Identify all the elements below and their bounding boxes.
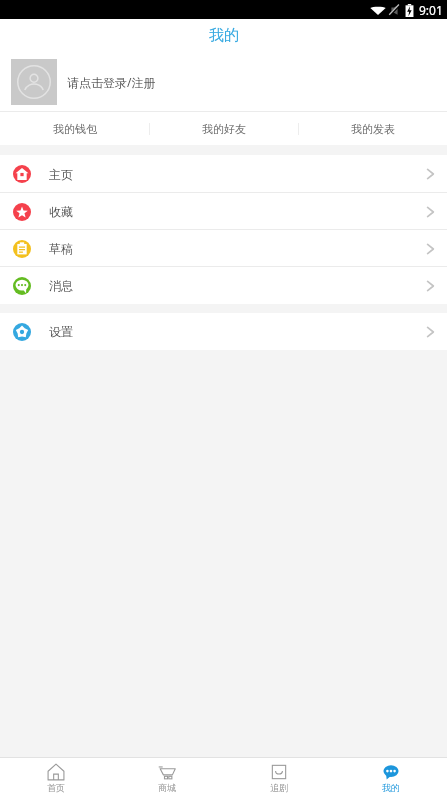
button[interactable]: 主页	[0, 155, 447, 193]
staticText: 首页	[47, 782, 65, 793]
staticText: 消息	[49, 278, 73, 293]
button[interactable]: 消息	[0, 267, 447, 304]
button[interactable]: 草稿	[0, 230, 447, 267]
staticText: 主页	[49, 167, 73, 182]
staticText: 追剧	[270, 782, 288, 793]
staticText: 我的钱包	[53, 122, 97, 136]
staticText: 请点击登录/注册	[67, 74, 156, 90]
staticText: 我的	[382, 782, 400, 793]
staticText: 设置	[49, 324, 73, 339]
button[interactable]: 商城	[111, 758, 223, 794]
staticText: 商城	[158, 782, 176, 793]
button[interactable]: 我的好友	[150, 112, 298, 145]
button[interactable]: 首页	[0, 758, 111, 794]
button[interactable]: 收藏	[0, 193, 447, 230]
staticText: 收藏	[49, 204, 73, 219]
button[interactable]: 我的钱包	[0, 112, 149, 145]
button[interactable]: 我的	[335, 758, 447, 794]
button[interactable]: 设置	[0, 313, 447, 350]
button[interactable]: 请点击登录/注册	[0, 52, 447, 111]
staticText: 我的好友	[202, 122, 246, 136]
staticText: 9:01	[419, 2, 443, 18]
staticText: 草稿	[49, 241, 73, 256]
button[interactable]: 追剧	[223, 758, 335, 794]
staticText: 我的发表	[351, 122, 395, 136]
button[interactable]: 我的发表	[299, 112, 447, 145]
staticText: 我的	[209, 26, 239, 45]
